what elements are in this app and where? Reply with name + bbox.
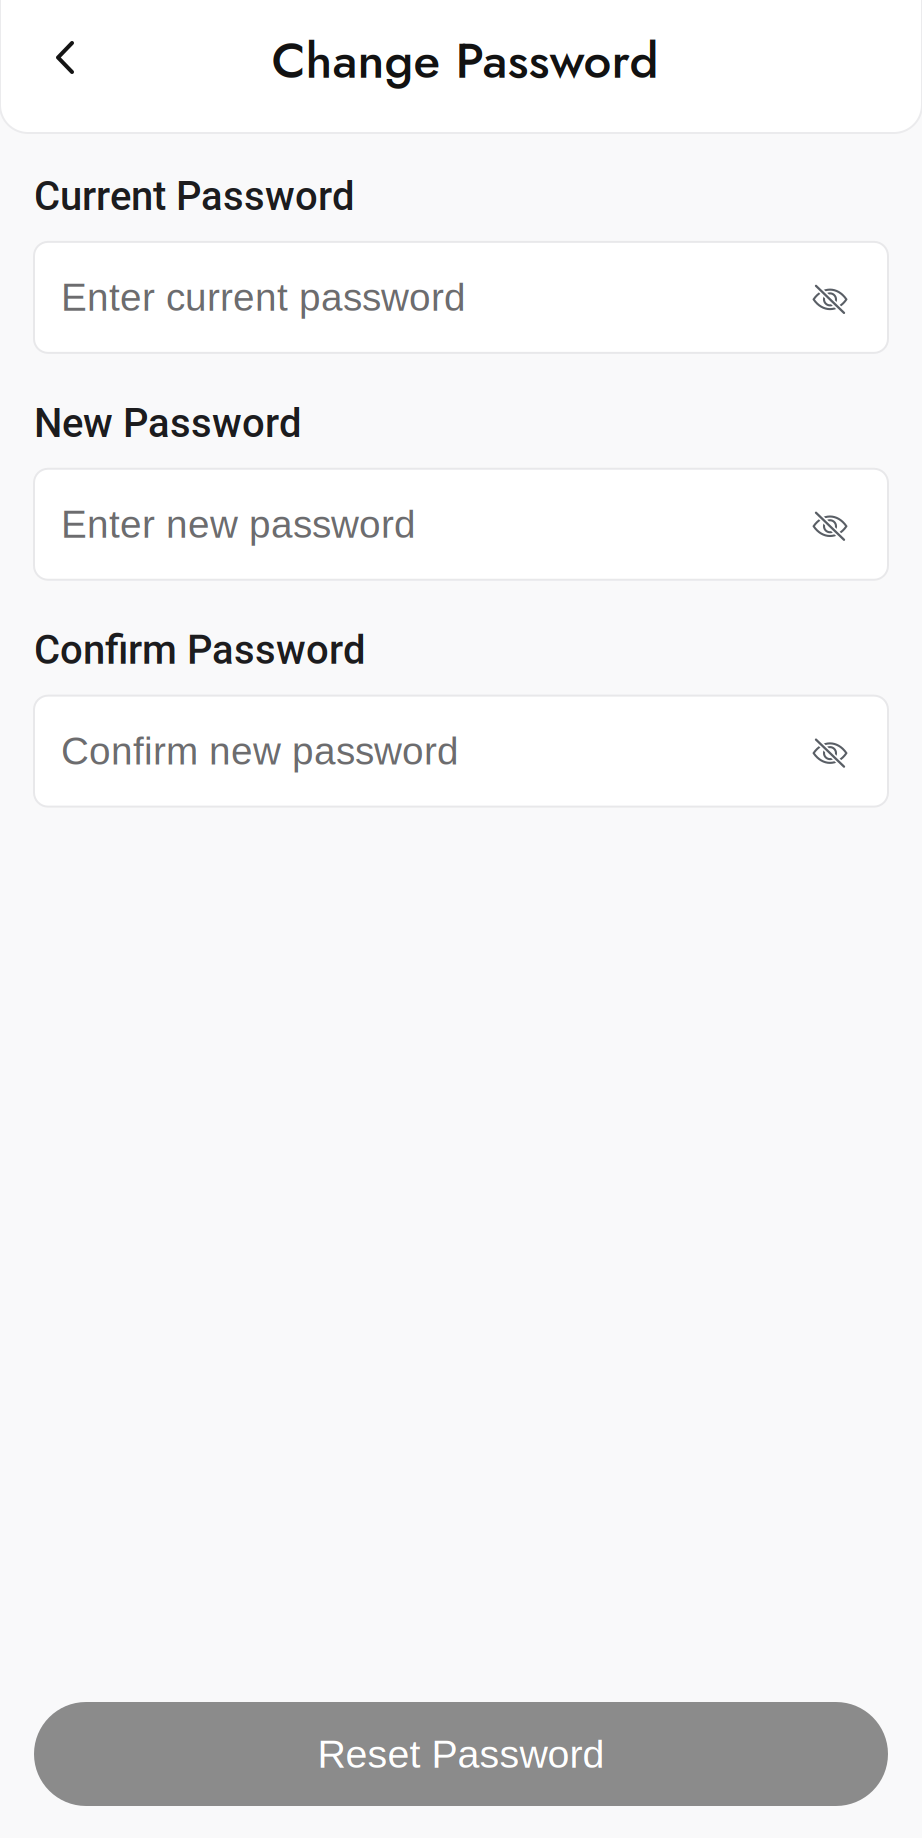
staticText: Enter current password (61, 276, 466, 319)
button[interactable]: Show password (790, 485, 848, 563)
button[interactable]: Back (0, 24, 102, 109)
staticText: New Password (34, 400, 302, 447)
button[interactable]: Enter current password (34, 242, 888, 353)
staticText: Confirm Password (34, 627, 366, 674)
staticText: Reset Password (317, 1732, 604, 1776)
staticText: Enter new password (61, 503, 416, 546)
staticText: Change Password (271, 25, 658, 96)
button[interactable]: Show password (790, 712, 848, 790)
staticText: Current Password (34, 173, 355, 220)
button[interactable]: Reset Password (34, 1702, 888, 1806)
button[interactable]: Show password (790, 258, 848, 336)
button[interactable]: Enter new password (34, 469, 888, 580)
staticText: Confirm new password (61, 729, 459, 773)
button[interactable]: Confirm new password (34, 696, 888, 807)
